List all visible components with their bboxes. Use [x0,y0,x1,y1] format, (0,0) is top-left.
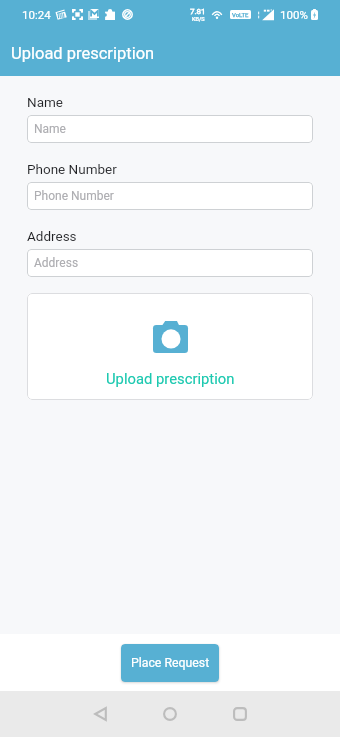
staticText: 10:24 [22,8,51,21]
button[interactable]: Recents [217,691,263,737]
staticText: 7.81 [190,7,206,16]
button[interactable]: Name [27,115,313,143]
staticText: Upload prescription [106,370,235,387]
button[interactable]: Place Request [121,644,219,682]
staticText: 100% [280,8,308,21]
staticText: Place Request [131,656,210,670]
staticText: Address [27,228,77,244]
button[interactable]: Address [27,249,313,277]
staticText: Phone Number [27,161,117,177]
staticText: Phone Number [34,189,114,203]
staticText: Name [27,94,63,110]
button[interactable]: Back [77,691,123,737]
button[interactable]: Phone Number [27,182,313,210]
button[interactable]: Home [147,691,193,737]
staticText: Upload prescription [11,44,155,63]
staticText: Address [34,256,79,270]
staticText: KB/S [192,16,205,22]
staticText: Name [34,122,66,136]
button[interactable]: Upload prescription [27,293,313,400]
staticText: VoLTE [232,11,249,18]
